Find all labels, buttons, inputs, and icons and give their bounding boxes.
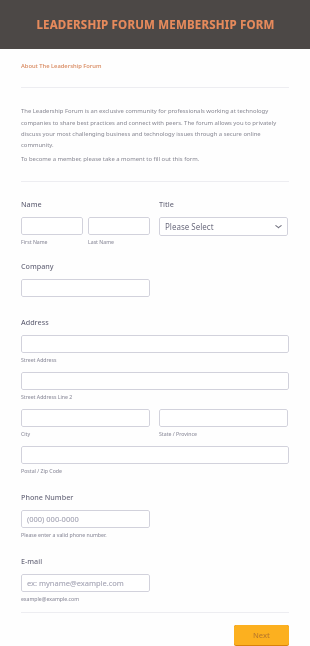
staticText: Address (21, 317, 49, 327)
button[interactable]: Street Address (21, 335, 289, 353)
button[interactable]: Postal / Zip Code (21, 446, 289, 464)
staticText: Please Select (165, 221, 214, 232)
button[interactable]: Title dropdown (159, 217, 288, 236)
staticText: City (21, 430, 31, 437)
staticText: (000) 000-0000 (27, 514, 79, 524)
staticText: E-mail (21, 556, 43, 566)
button[interactable]: State / Province (159, 409, 288, 427)
staticText: First Name (21, 238, 48, 245)
staticText: Street Address Line 2 (21, 393, 73, 400)
staticText: Next (253, 630, 270, 640)
staticText: To become a member, please take a moment… (21, 155, 200, 163)
staticText: Last Name (88, 238, 114, 245)
button[interactable]: First Name (21, 217, 83, 235)
staticText: Postal / Zip Code (21, 467, 62, 474)
staticText: Street Address (21, 356, 57, 363)
button[interactable]: Company (21, 279, 150, 297)
staticText: Title (159, 199, 174, 209)
button[interactable]: Next (234, 625, 289, 646)
staticText: The Leadership Forum is an exclusive com… (21, 107, 289, 148)
staticText: example@example.com (21, 595, 80, 602)
button[interactable]: City (21, 409, 150, 427)
button[interactable]: Phone Number (21, 510, 150, 528)
staticText: State / Province (159, 430, 197, 437)
staticText: Please enter a valid phone number. (21, 531, 107, 538)
staticText: Phone Number (21, 492, 74, 502)
staticText: ex: myname@example.com (27, 578, 124, 588)
button[interactable]: Last Name (88, 217, 150, 235)
button[interactable]: E-mail (21, 574, 150, 592)
staticText: Name (21, 199, 42, 209)
staticText: Company (21, 261, 54, 271)
staticText: LEADERSHIP FORUM MEMBERSHIP FORM (36, 17, 275, 33)
staticText: About The Leadership Forum (21, 62, 102, 70)
button[interactable]: Street Address Line 2 (21, 372, 289, 390)
